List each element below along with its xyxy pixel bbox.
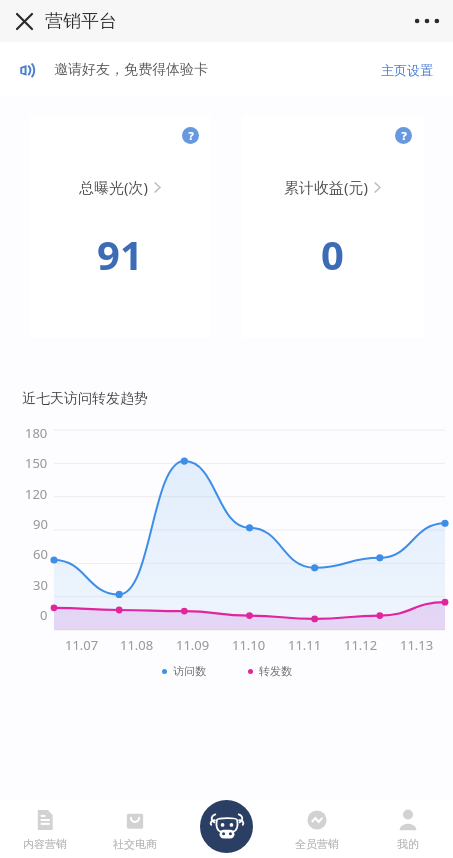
staticText: 访问数 (173, 664, 206, 678)
staticText: 11.08 (120, 636, 154, 654)
staticText: ? (401, 128, 407, 143)
staticText: 累计收益(元) (284, 177, 369, 197)
button[interactable]: Help (182, 127, 199, 144)
staticText: 11.10 (232, 636, 266, 654)
staticText: 90 (33, 515, 48, 533)
staticText: 91 (97, 227, 143, 281)
button[interactable]: 主页设置 (377, 58, 437, 82)
button[interactable]: Close (8, 5, 40, 37)
staticText: 转发数 (259, 664, 292, 678)
staticText: 150 (25, 454, 48, 472)
staticText: 11.13 (400, 636, 434, 654)
staticText: 11.11 (288, 636, 322, 654)
button[interactable]: Help (395, 127, 412, 144)
staticText: 0 (321, 227, 344, 281)
staticText: 11.12 (344, 636, 378, 654)
staticText: 全员营销 (295, 837, 339, 851)
staticText: 内容营销 (23, 837, 67, 851)
staticText: 社交电商 (113, 837, 157, 851)
staticText: 11.09 (176, 636, 210, 654)
staticText: ? (188, 128, 194, 143)
button[interactable]: Help (241, 115, 424, 338)
button[interactable]: Home (200, 800, 253, 853)
button[interactable]: More options (409, 3, 445, 39)
staticText: 30 (33, 576, 48, 594)
button[interactable]: 内容营销 (0, 800, 90, 858)
button[interactable]: 全员营销 (271, 800, 362, 858)
staticText: 近七天访问转发趋势 (22, 390, 148, 408)
button[interactable]: 社交电商 (90, 800, 180, 858)
staticText: 主页设置 (381, 62, 433, 78)
staticText: 营销平台 (45, 10, 117, 33)
button[interactable]: Help (29, 115, 211, 338)
staticText: 120 (25, 485, 48, 503)
staticText: 邀请好友，免费得体验卡 (54, 61, 208, 79)
staticText: 11.07 (65, 636, 99, 654)
staticText: 0 (40, 606, 48, 624)
staticText: 总曝光(次) (79, 177, 149, 197)
staticText: 我的 (397, 837, 419, 851)
staticText: 180 (25, 424, 48, 442)
staticText: 60 (33, 545, 48, 563)
button[interactable]: 我的 (362, 800, 453, 858)
